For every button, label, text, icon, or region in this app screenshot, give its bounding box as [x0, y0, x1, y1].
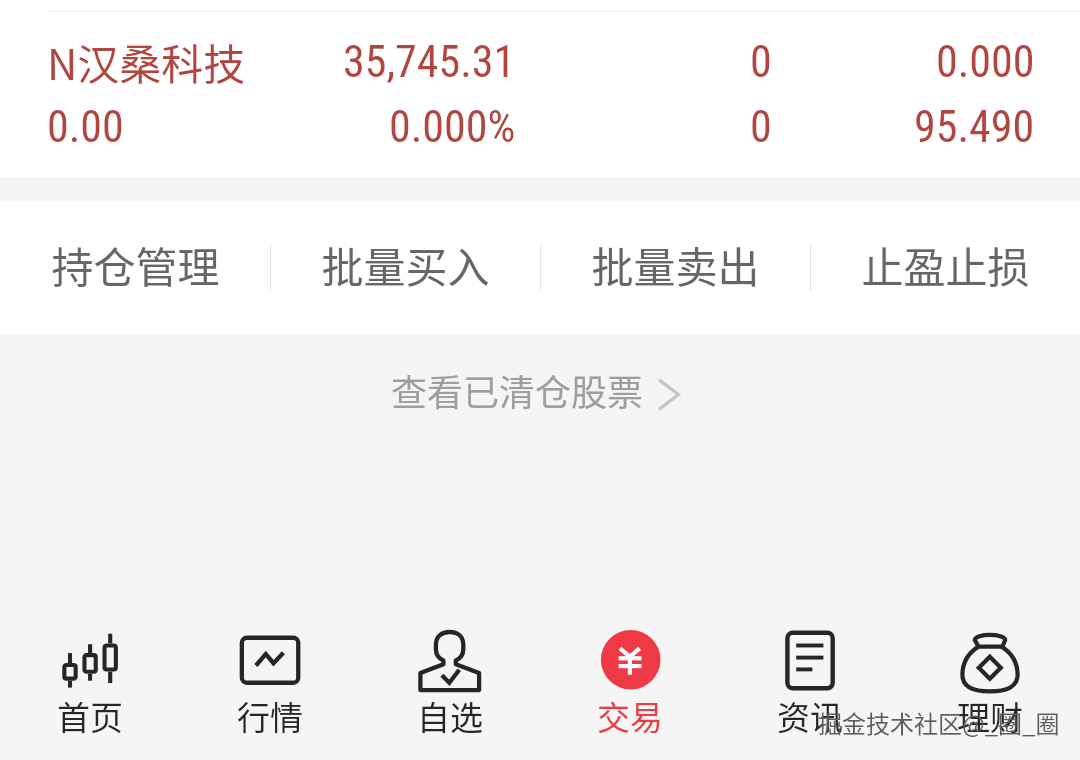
- staticText: 0.000: [936, 36, 1035, 88]
- staticText: 批量买入: [321, 234, 490, 295]
- button[interactable]: Trade: [540, 610, 720, 760]
- staticText: N汉桑科技: [47, 31, 246, 92]
- button[interactable]: N汉桑科技: [0, 0, 1080, 177]
- staticText: 首页: [57, 692, 123, 740]
- staticText: 持仓管理: [51, 234, 220, 295]
- button[interactable]: Home: [0, 610, 180, 760]
- staticText: 查看已清仓股票: [391, 364, 644, 416]
- staticText: 掘金技术社区@_圈_圈: [818, 705, 1060, 740]
- staticText: 95.490: [914, 101, 1035, 153]
- button[interactable]: News: [720, 610, 900, 760]
- staticText: 批量卖出: [591, 234, 760, 295]
- staticText: 0.00: [47, 101, 124, 153]
- staticText: 行情: [237, 692, 303, 740]
- button[interactable]: 止盈止损: [810, 201, 1080, 334]
- staticText: 理财: [957, 692, 1023, 740]
- staticText: 35,745.31: [343, 36, 516, 88]
- staticText: 0: [750, 36, 772, 88]
- staticText: 资讯: [777, 692, 843, 740]
- staticText: 0: [750, 101, 772, 153]
- button[interactable]: Markets: [180, 610, 360, 760]
- button[interactable]: Watchlist: [360, 610, 540, 760]
- button[interactable]: 批量买入: [270, 201, 540, 334]
- staticText: 交易: [597, 692, 663, 740]
- staticText: 自选: [417, 692, 483, 740]
- button[interactable]: Wealth: [900, 610, 1080, 760]
- button[interactable]: 查看已清仓股票: [379, 354, 692, 426]
- button[interactable]: 持仓管理: [0, 201, 270, 334]
- staticText: 0.000%: [389, 101, 516, 153]
- staticText: 止盈止损: [861, 234, 1030, 295]
- button[interactable]: 批量卖出: [540, 201, 810, 334]
